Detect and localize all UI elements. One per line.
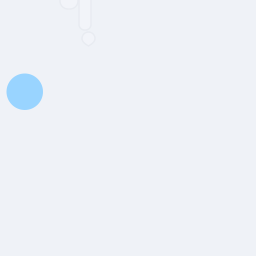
button[interactable]: Profile — [6, 72, 43, 111]
